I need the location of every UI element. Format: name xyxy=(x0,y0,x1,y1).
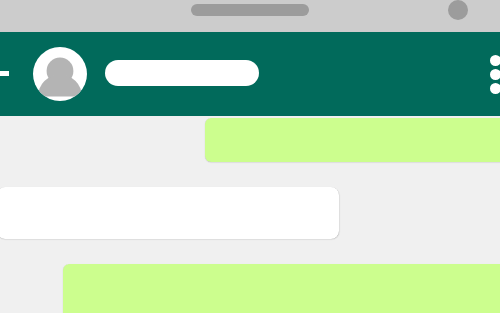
button[interactable]: More options xyxy=(484,48,500,100)
button[interactable]: Sent message xyxy=(205,118,500,162)
button[interactable]: Contact profile photo xyxy=(33,47,87,101)
button[interactable]: Contact name xyxy=(105,60,259,86)
